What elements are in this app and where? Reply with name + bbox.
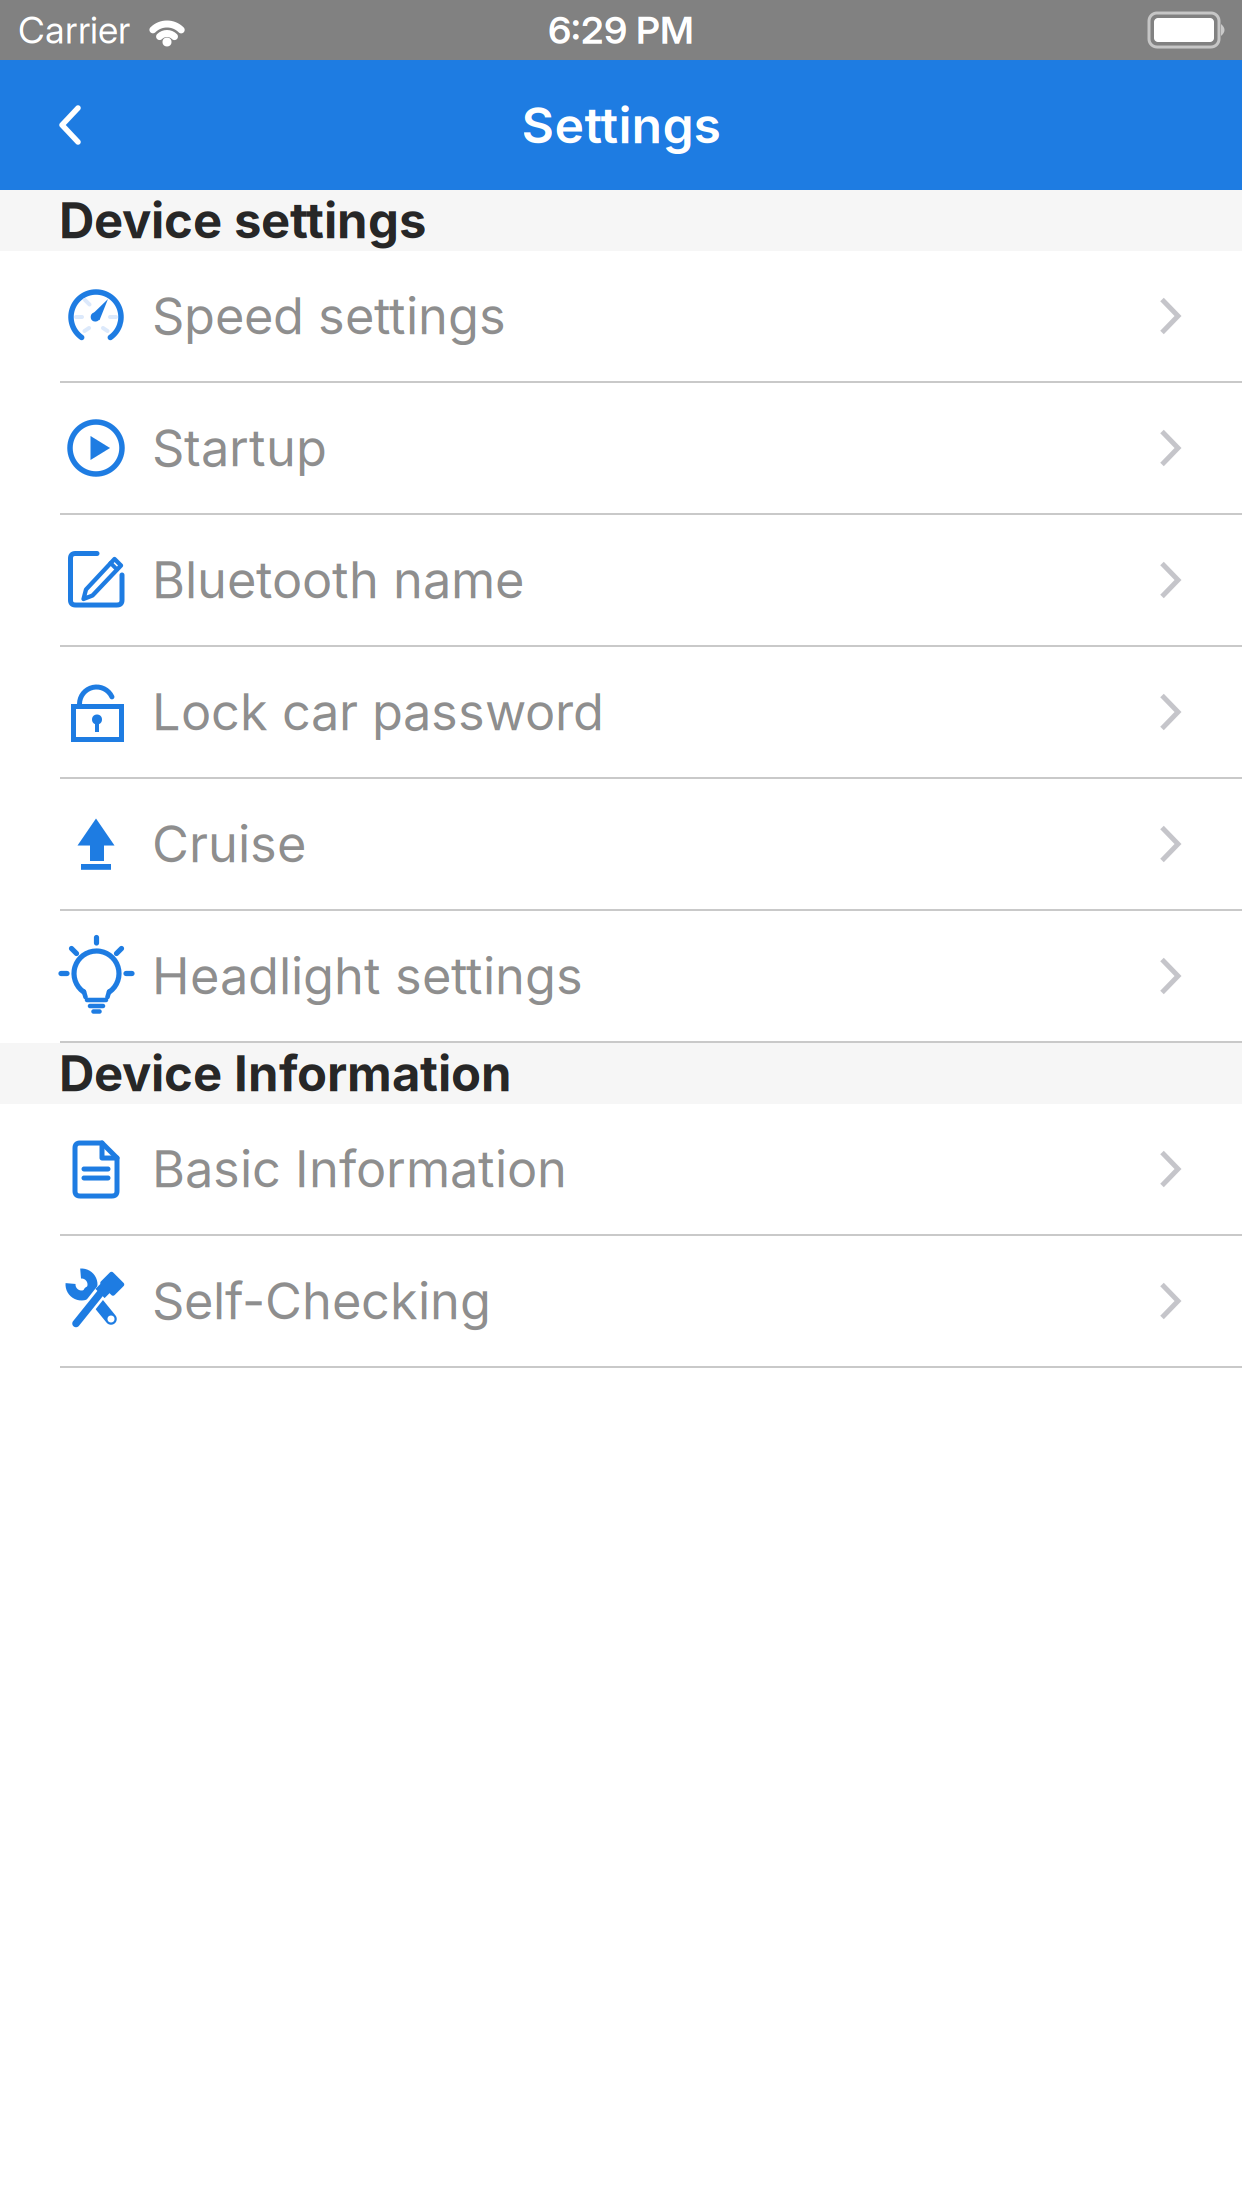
button[interactable]: Bluetooth name	[0, 515, 1242, 647]
staticText: Device settings	[59, 191, 426, 250]
staticText: Basic Information	[152, 1138, 567, 1199]
staticText: Carrier	[18, 8, 130, 52]
staticText: Settings	[521, 95, 720, 155]
staticText: Startup	[152, 417, 327, 478]
button[interactable]: Startup	[0, 383, 1242, 515]
staticText: Cruise	[152, 813, 306, 874]
staticText: Lock car password	[152, 681, 604, 742]
button[interactable]: Back	[0, 60, 119, 190]
button[interactable]: Self-Checking	[0, 1236, 1242, 1368]
staticText: Self-Checking	[152, 1270, 491, 1331]
button[interactable]: Headlight settings	[0, 911, 1242, 1043]
button[interactable]: Cruise	[0, 779, 1242, 911]
staticText: Speed settings	[152, 285, 506, 346]
button[interactable]: Speed settings	[0, 251, 1242, 383]
button[interactable]: Basic Information	[0, 1104, 1242, 1236]
button[interactable]: Lock car password	[0, 647, 1242, 779]
staticText: Headlight settings	[152, 945, 583, 1006]
staticText: Device Information	[59, 1044, 512, 1103]
staticText: Bluetooth name	[152, 549, 524, 610]
staticText: 6:29 PM	[548, 7, 694, 53]
